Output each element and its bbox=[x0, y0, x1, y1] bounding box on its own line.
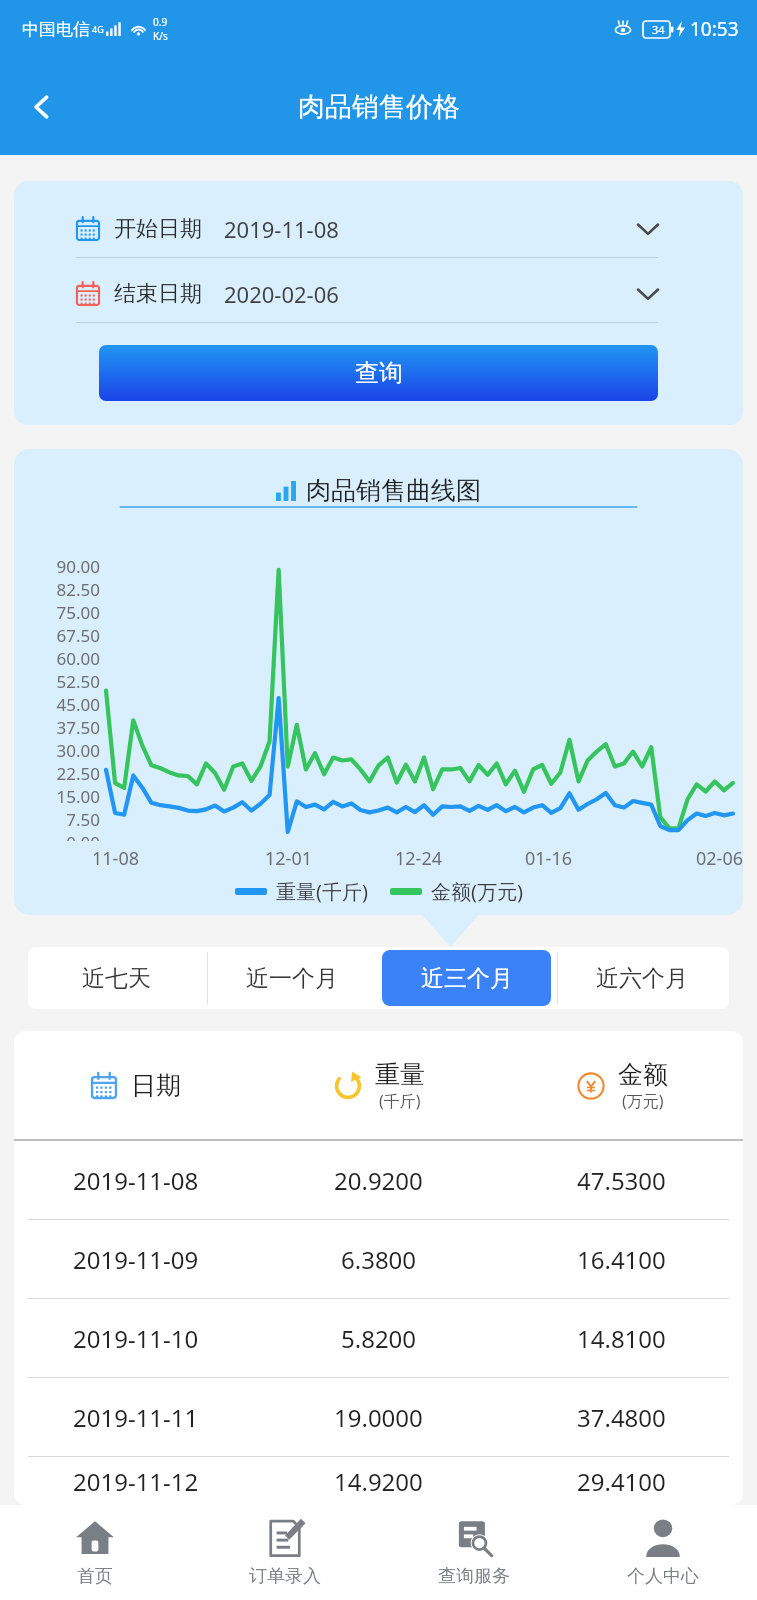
button[interactable]: 近六个月 bbox=[557, 950, 726, 1006]
button[interactable]: 结束日期 bbox=[76, 266, 658, 322]
staticText: 19.0000 bbox=[334, 1401, 423, 1434]
staticText: 2019-11-09 bbox=[73, 1243, 199, 1276]
staticText: 37.4800 bbox=[577, 1401, 666, 1434]
staticText: (万元) bbox=[622, 1090, 664, 1112]
staticText: 查询 bbox=[355, 358, 403, 388]
button[interactable]: Back bbox=[14, 79, 70, 135]
staticText: 52.50 bbox=[28, 670, 100, 693]
staticText: 34 bbox=[652, 22, 665, 37]
staticText: 15.00 bbox=[28, 785, 100, 808]
button[interactable]: 2019-11-08 bbox=[14, 1141, 743, 1219]
staticText: 02-06 bbox=[696, 846, 743, 871]
staticText: 7.50 bbox=[28, 808, 100, 831]
staticText: 37.50 bbox=[28, 716, 100, 739]
staticText: 重量 bbox=[375, 1059, 425, 1090]
button[interactable]: 近一个月 bbox=[207, 950, 376, 1006]
staticText: (千斤) bbox=[379, 1090, 421, 1112]
staticText: 0.00 bbox=[28, 831, 100, 841]
button[interactable]: 查询服务 bbox=[379, 1505, 568, 1600]
staticText: 订单录入 bbox=[249, 1565, 321, 1588]
staticText: 0.9 bbox=[153, 15, 168, 29]
staticText: 4G bbox=[92, 23, 104, 35]
staticText: 2020-02-06 bbox=[224, 279, 339, 309]
staticText: 首页 bbox=[77, 1565, 113, 1588]
staticText: 金额 bbox=[618, 1059, 668, 1090]
staticText: 12-01 bbox=[265, 846, 312, 871]
staticText: 14.9200 bbox=[334, 1465, 423, 1498]
button[interactable]: 个人中心 bbox=[568, 1505, 757, 1600]
staticText: 肉品销售曲线图 bbox=[306, 475, 481, 506]
staticText: 近六个月 bbox=[596, 964, 688, 993]
staticText: 重量(千斤) bbox=[276, 878, 368, 905]
staticText: 6.3800 bbox=[341, 1243, 417, 1276]
staticText: 个人中心 bbox=[627, 1565, 699, 1588]
staticText: 查询服务 bbox=[438, 1565, 510, 1588]
staticText: 日期 bbox=[131, 1070, 181, 1101]
staticText: 5.8200 bbox=[341, 1322, 417, 1355]
staticText: 60.00 bbox=[28, 647, 100, 670]
staticText: 14.8100 bbox=[577, 1322, 666, 1355]
staticText: 开始日期 bbox=[114, 215, 202, 243]
staticText: 01-16 bbox=[525, 846, 572, 871]
button[interactable]: 近三个月 bbox=[382, 950, 551, 1006]
button[interactable]: 查询 bbox=[99, 345, 658, 401]
staticText: 47.5300 bbox=[577, 1164, 666, 1197]
button[interactable]: 开始日期 bbox=[76, 201, 658, 257]
button[interactable]: 首页 bbox=[0, 1505, 190, 1600]
staticText: 22.50 bbox=[28, 762, 100, 785]
staticText: 结束日期 bbox=[114, 280, 202, 308]
staticText: 中国电信 bbox=[22, 19, 90, 40]
button[interactable]: 2019-11-11 bbox=[14, 1378, 743, 1456]
button[interactable]: 2019-11-09 bbox=[14, 1220, 743, 1298]
staticText: 82.50 bbox=[28, 578, 100, 601]
staticText: 11-08 bbox=[92, 846, 139, 871]
button[interactable]: 订单录入 bbox=[190, 1505, 379, 1600]
staticText: 近七天 bbox=[82, 964, 151, 993]
staticText: K/s bbox=[153, 29, 168, 43]
button[interactable]: 2019-11-10 bbox=[14, 1299, 743, 1377]
staticText: 2019-11-11 bbox=[73, 1401, 199, 1434]
staticText: 30.00 bbox=[28, 739, 100, 762]
button[interactable]: 近七天 bbox=[31, 950, 201, 1006]
staticText: 2019-11-08 bbox=[224, 214, 339, 244]
staticText: 近三个月 bbox=[421, 964, 513, 993]
button[interactable]: 2019-11-12 bbox=[14, 1457, 743, 1505]
staticText: 90.00 bbox=[28, 555, 100, 578]
staticText: 75.00 bbox=[28, 601, 100, 624]
staticText: 29.4100 bbox=[577, 1465, 666, 1498]
staticText: 2019-11-12 bbox=[73, 1465, 199, 1498]
staticText: 67.50 bbox=[28, 624, 100, 647]
staticText: 近一个月 bbox=[246, 964, 338, 993]
staticText: 45.00 bbox=[28, 693, 100, 716]
staticText: 肉品销售价格 bbox=[298, 90, 460, 124]
staticText: 金额(万元) bbox=[431, 878, 523, 905]
staticText: 10:53 bbox=[690, 16, 739, 42]
staticText: 2019-11-10 bbox=[73, 1322, 199, 1355]
staticText: 2019-11-08 bbox=[73, 1164, 199, 1197]
staticText: 12-24 bbox=[395, 846, 442, 871]
staticText: 16.4100 bbox=[577, 1243, 666, 1276]
staticText: 20.9200 bbox=[334, 1164, 423, 1197]
